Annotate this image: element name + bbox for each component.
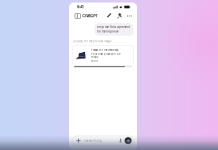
staticText: ChatGPT — [82, 14, 97, 18]
button[interactable]: New chat — [107, 12, 113, 20]
button[interactable]: Dictate — [119, 138, 122, 143]
button[interactable]: More options — [123, 12, 132, 20]
staticText: Your final picks will be ready — [91, 52, 120, 58]
staticText: Ask anything — [84, 139, 102, 142]
button[interactable]: Voice mode — [122, 137, 132, 144]
staticText: for my nephew — [97, 30, 118, 33]
staticText: Looking for the product image — [73, 40, 111, 43]
staticText: help me find a present — [97, 25, 130, 29]
button[interactable]: Open sidebar — [74, 12, 81, 20]
button[interactable]: Add attachment — [76, 138, 81, 143]
staticText: soon. — [91, 59, 98, 62]
staticText: Thanks for the feedback. — [91, 49, 119, 52]
button[interactable]: Account — [113, 12, 123, 20]
staticText: 9:41 — [77, 5, 84, 9]
